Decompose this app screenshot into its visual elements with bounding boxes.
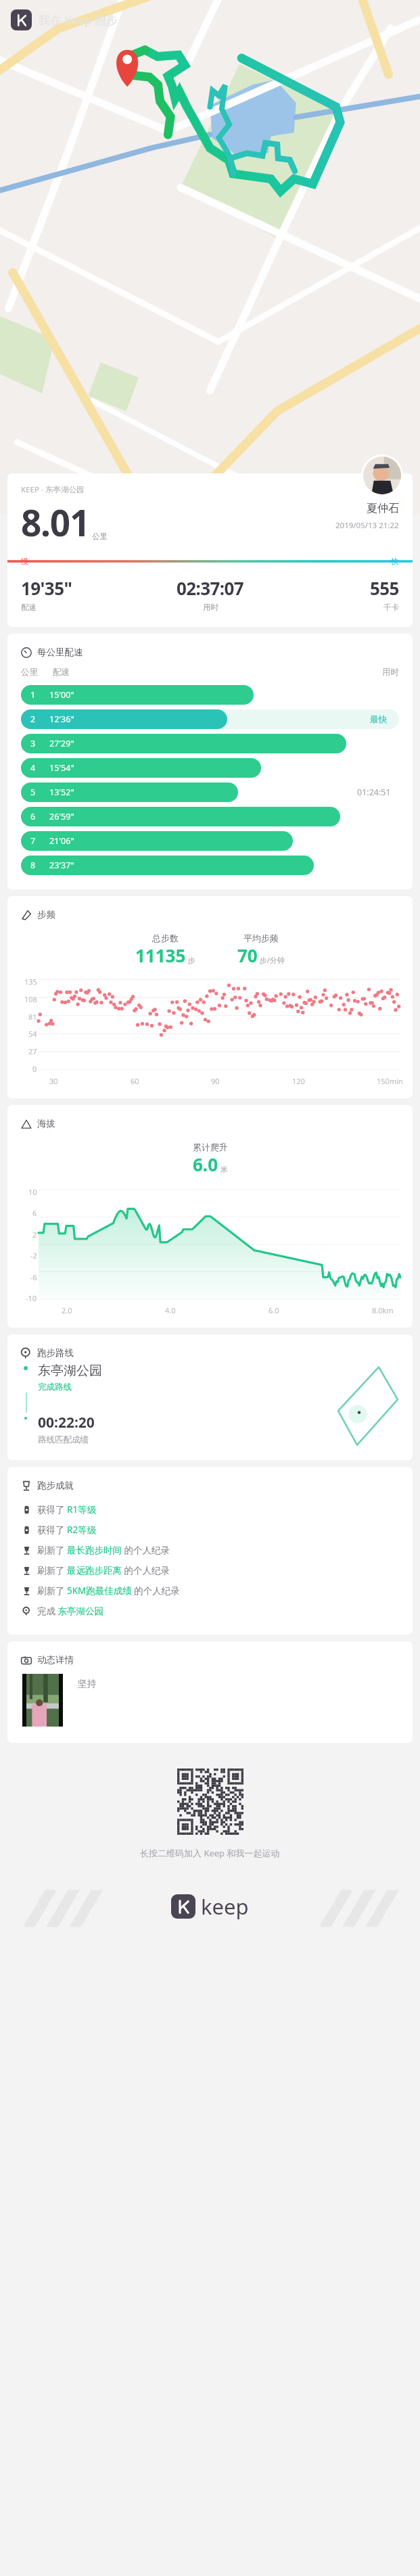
button[interactable]: 每公里配速 — [21, 647, 83, 658]
button[interactable]: 获得了 R2等级 — [22, 1524, 413, 1536]
staticText: 81 — [28, 1012, 37, 1022]
staticText: 0 — [32, 1064, 37, 1074]
staticText: 坚持 — [78, 1678, 96, 1689]
staticText: 11135 — [135, 943, 186, 967]
staticText: 26'59" — [49, 811, 74, 822]
staticText: 快 — [391, 557, 399, 566]
staticText: 02:37:07 — [177, 576, 244, 600]
button[interactable]: 7 — [21, 831, 399, 851]
staticText: 2 — [30, 713, 36, 725]
staticText: 刷新了 5KM跑最佳成绩 的个人纪录 — [37, 1585, 180, 1597]
button[interactable]: 刷新了 最远跑步距离 的个人纪录 — [22, 1564, 413, 1576]
button[interactable]: 8 — [21, 856, 399, 875]
staticText: 15'00" — [49, 689, 74, 701]
staticText: KEEP · 东亭湖公园 — [21, 484, 85, 495]
staticText: 27'29" — [49, 738, 74, 749]
button[interactable]: keep — [171, 1892, 249, 1921]
staticText: 27 — [28, 1046, 37, 1056]
staticText: 东亭湖公园 — [38, 1363, 102, 1379]
staticText: 慢 — [21, 557, 29, 566]
staticText: 6 — [30, 811, 36, 822]
staticText: 步/分钟 — [258, 955, 285, 965]
staticText: 配速 — [21, 603, 37, 612]
staticText: 累计爬升 — [193, 1142, 228, 1152]
button[interactable]: 跑步成就 — [21, 1480, 74, 1491]
staticText: 米 — [218, 1164, 228, 1174]
staticText: 23'37" — [49, 860, 74, 871]
staticText: 配速 — [53, 667, 70, 678]
staticText: 90 — [211, 1076, 220, 1086]
button[interactable]: 4 — [21, 758, 399, 778]
staticText: 6 — [32, 1208, 37, 1218]
staticText: 01:24:51 — [357, 787, 391, 798]
staticText: 完成 东亭湖公园 — [37, 1605, 104, 1617]
staticText: 刷新了 最长跑步时间 的个人纪录 — [37, 1544, 170, 1556]
staticText: keep — [201, 1892, 249, 1921]
button[interactable]: 1 — [21, 685, 399, 705]
button[interactable]: 3 — [21, 734, 399, 753]
staticText: 获得了 R1等级 — [37, 1503, 97, 1516]
staticText: 长按二维码加入 Keep 和我一起运动 — [140, 1847, 280, 1859]
button[interactable]: 02:37:07 — [147, 576, 273, 612]
staticText: 30 — [49, 1076, 58, 1086]
staticText: 获得了 R2等级 — [37, 1524, 97, 1536]
button[interactable]: 完成 东亭湖公园 — [22, 1605, 413, 1617]
staticText: 夏仲石 — [367, 502, 399, 515]
button[interactable]: 00:22:20 — [22, 1413, 95, 1445]
staticText: 用时 — [382, 667, 399, 678]
staticText: 135 — [24, 977, 37, 987]
staticText: 10 — [28, 1187, 37, 1197]
button[interactable]: 5 — [21, 782, 399, 802]
button[interactable]: 刷新了 最长跑步时间 的个人纪录 — [22, 1544, 413, 1556]
staticText: 150min — [377, 1076, 403, 1086]
staticText: 步频 — [37, 909, 55, 920]
staticText: 千卡 — [383, 603, 399, 612]
button[interactable]: 步频 — [21, 909, 55, 920]
staticText: 5 — [30, 787, 36, 798]
staticText: 13'52" — [49, 787, 74, 798]
staticText: 总步数 — [152, 933, 179, 943]
button[interactable]: 2 — [21, 709, 399, 729]
button[interactable]: 19'35" — [21, 576, 147, 612]
button[interactable]: 555 — [273, 576, 399, 612]
staticText: 2 — [32, 1230, 37, 1240]
button[interactable]: 获得了 R1等级 — [22, 1503, 413, 1516]
staticText: 动态详情 — [37, 1654, 74, 1666]
staticText: -6 — [30, 1272, 37, 1282]
staticText: 2019/05/13 21:22 — [335, 520, 399, 531]
staticText: 每公里配速 — [37, 647, 83, 658]
staticText: 海拔 — [37, 1118, 55, 1129]
button[interactable]: 动态详情 — [21, 1654, 74, 1666]
staticText: 我在 Keep 跑步 — [39, 12, 118, 28]
staticText: 4 — [30, 762, 36, 774]
button[interactable]: 刷新了 5KM跑最佳成绩 的个人纪录 — [22, 1585, 413, 1597]
staticText: 555 — [370, 576, 399, 600]
staticText: 8.01 — [21, 498, 90, 546]
staticText: 19'35" — [21, 576, 72, 600]
staticText: 12'36" — [49, 713, 74, 725]
button[interactable]: 东亭湖公园 — [22, 1363, 102, 1392]
staticText: 120 — [292, 1076, 305, 1086]
other: QR code — [177, 1769, 243, 1835]
staticText: 7 — [30, 835, 36, 847]
staticText: 路线匹配成绩 — [38, 1434, 89, 1445]
staticText: 8.0km — [372, 1305, 394, 1315]
staticText: 公里 — [92, 532, 108, 541]
other: Keep logo — [11, 9, 32, 30]
button[interactable]: 坚持 — [22, 1674, 96, 1727]
staticText: 6.0 — [269, 1305, 279, 1315]
staticText: 6.0 — [193, 1152, 218, 1176]
button[interactable]: 跑步路线 — [21, 1347, 74, 1359]
staticText: 平均步频 — [243, 933, 279, 943]
staticText: 1 — [30, 689, 36, 701]
staticText: 2.0 — [62, 1305, 72, 1315]
staticText: 70 — [237, 943, 258, 967]
staticText: 刷新了 最远跑步距离 的个人纪录 — [37, 1564, 170, 1576]
button[interactable]: 6 — [21, 807, 399, 826]
staticText: -10 — [26, 1293, 37, 1303]
button[interactable]: 海拔 — [21, 1118, 55, 1129]
staticText: 4.0 — [165, 1305, 176, 1315]
button[interactable]: Keep logo — [11, 9, 118, 30]
button[interactable]: User avatar — [361, 454, 403, 496]
staticText: 108 — [24, 994, 37, 1004]
